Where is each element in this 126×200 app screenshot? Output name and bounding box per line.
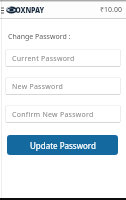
staticText: Update Password <box>30 140 96 151</box>
staticText: New Password <box>12 82 64 92</box>
button[interactable]: OXNPAY <box>5 2 42 18</box>
button[interactable]: Confirm New Password <box>5 105 121 123</box>
staticText: ₹10.00 <box>100 5 122 15</box>
staticText: OXNPAY <box>15 3 45 15</box>
button[interactable]: Current Password <box>5 49 121 67</box>
staticText: Confirm New Password <box>12 110 94 120</box>
staticText: Change Password : <box>8 32 71 42</box>
staticText: Current Password <box>12 54 75 64</box>
button[interactable]: Update Password <box>7 135 118 155</box>
button[interactable]: New Password <box>5 77 121 95</box>
button[interactable]: ₹10.00 <box>100 5 122 15</box>
button[interactable]: Open navigation menu <box>0 2 5 18</box>
